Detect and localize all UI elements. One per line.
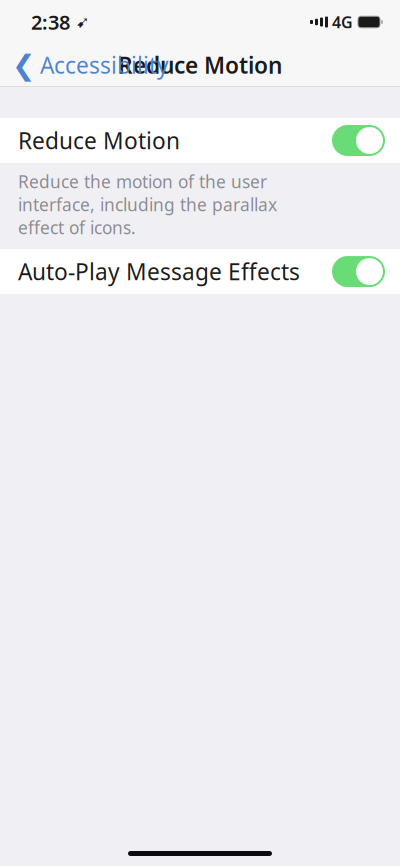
- button[interactable]: Reduce Motion: [0, 118, 400, 163]
- staticText: 2:38: [31, 9, 70, 35]
- button[interactable]: ❮: [0, 44, 177, 86]
- button[interactable]: Auto-Play Message Effects: [0, 249, 400, 294]
- staticText: ➹: [70, 13, 89, 31]
- staticText: Reduce Motion: [118, 50, 282, 80]
- staticText: ❮: [12, 49, 35, 81]
- staticText: Reduce Motion: [18, 125, 180, 155]
- staticText: Auto-Play Message Effects: [18, 256, 300, 287]
- staticText: Reduce the motion of the user interface,…: [18, 170, 277, 239]
- staticText: 4G: [332, 11, 353, 33]
- staticText: Accessibility: [40, 50, 169, 80]
